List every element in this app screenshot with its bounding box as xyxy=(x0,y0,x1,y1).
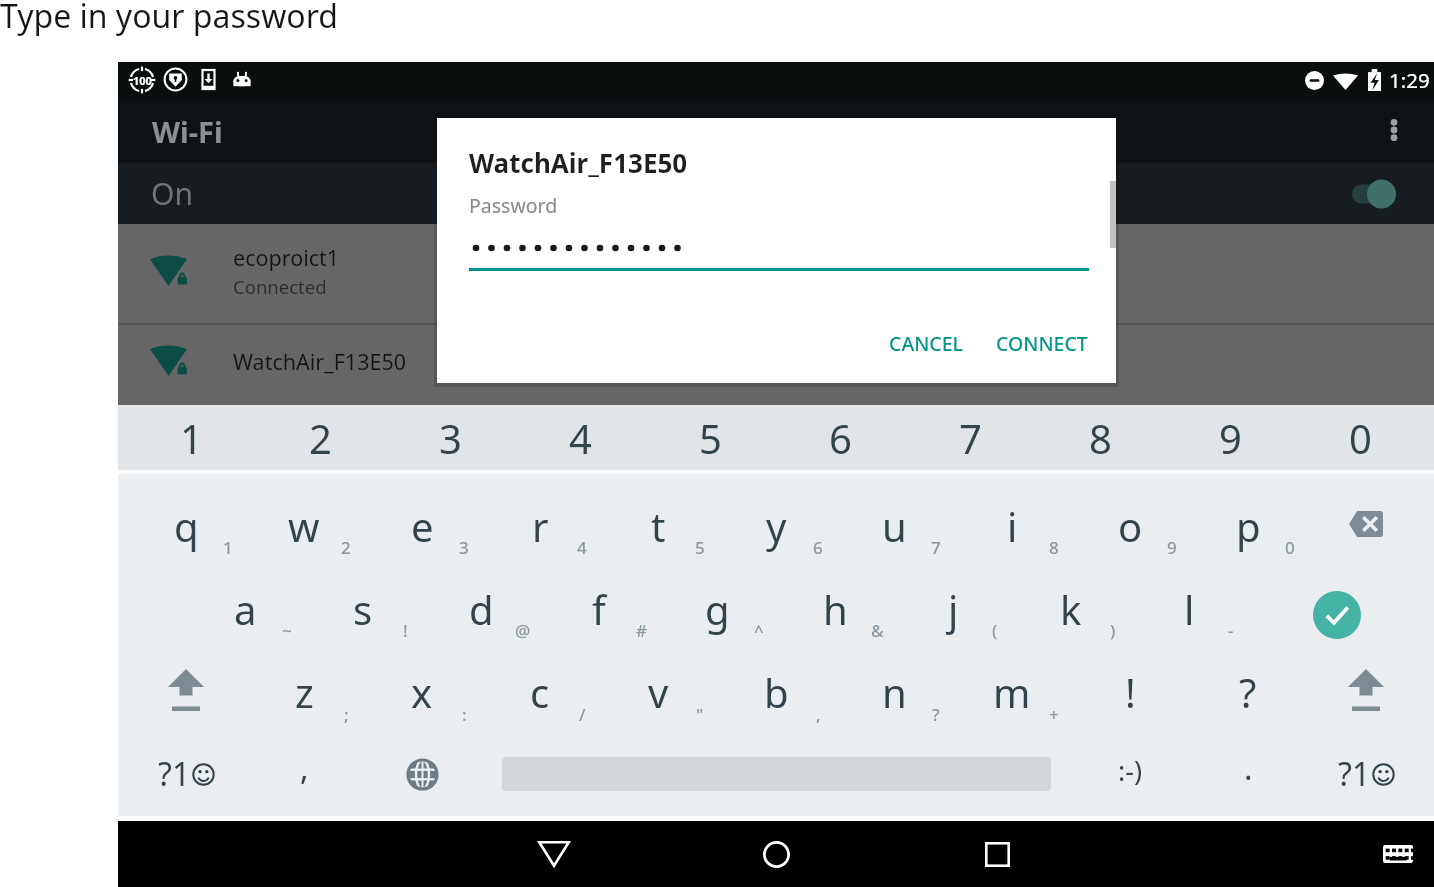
button[interactable]: WatchAir_F13E50 xyxy=(118,325,1434,397)
button[interactable]: w xyxy=(245,482,363,565)
button[interactable]: Symbols xyxy=(1307,732,1425,816)
button[interactable]: t xyxy=(599,482,717,565)
staticText: Password xyxy=(469,192,558,219)
staticText: & xyxy=(871,619,884,642)
button[interactable]: Space xyxy=(481,732,1071,816)
button[interactable]: Change language xyxy=(363,732,481,816)
button[interactable]: :-) xyxy=(1071,732,1189,816)
staticText: j xyxy=(948,582,959,636)
button[interactable]: 3 xyxy=(385,405,515,470)
button[interactable]: More options xyxy=(1370,106,1418,154)
staticText: 7 xyxy=(959,411,982,465)
button[interactable]: r xyxy=(481,482,599,565)
button[interactable]: ! xyxy=(1071,648,1189,732)
staticText: ) xyxy=(1110,619,1116,642)
button[interactable]: Shift xyxy=(1307,648,1425,732)
staticText: t xyxy=(651,499,666,553)
button[interactable]: Symbols xyxy=(127,732,245,816)
staticText: o xyxy=(1118,499,1143,553)
staticText: Wi-Fi xyxy=(152,112,223,151)
staticText: Type in your password xyxy=(0,0,338,38)
button[interactable]: l xyxy=(1130,565,1248,648)
button[interactable]: 8 xyxy=(1035,405,1165,470)
button[interactable]: m xyxy=(953,648,1071,732)
button[interactable]: x xyxy=(363,648,481,732)
staticText: v xyxy=(648,665,669,719)
staticText: ?1 xyxy=(158,752,191,796)
button[interactable]: CANCEL xyxy=(879,320,973,367)
staticText: d xyxy=(469,582,494,636)
staticText: a xyxy=(234,582,257,636)
button[interactable]: ecoproict1 xyxy=(118,221,1434,321)
button[interactable]: Recent apps xyxy=(969,826,1025,882)
staticText: ? xyxy=(1239,665,1257,719)
button[interactable]: Shift xyxy=(127,648,245,732)
staticText: : xyxy=(462,703,467,726)
staticText: - xyxy=(1228,619,1234,642)
staticText: WatchAir_F13E50 xyxy=(469,145,688,180)
staticText: 3 xyxy=(459,536,469,559)
staticText: 6 xyxy=(829,411,852,465)
button[interactable]: q xyxy=(127,482,245,565)
staticText: r xyxy=(532,499,549,553)
staticText: , xyxy=(300,746,309,790)
staticText: / xyxy=(579,703,586,726)
button[interactable]: h xyxy=(776,565,894,648)
button[interactable]: c xyxy=(481,648,599,732)
staticText: ! xyxy=(1125,665,1136,719)
button[interactable]: , xyxy=(245,732,363,816)
button[interactable]: p xyxy=(1189,482,1307,565)
staticText: n xyxy=(882,665,907,719)
button[interactable]: Back xyxy=(526,826,582,882)
button[interactable]: n xyxy=(835,648,953,732)
staticText: CONNECT xyxy=(996,330,1088,357)
button[interactable]: z xyxy=(245,648,363,732)
staticText: Connected xyxy=(233,274,327,299)
button[interactable]: k xyxy=(1012,565,1130,648)
button[interactable]: Enter xyxy=(1248,565,1425,648)
button[interactable]: 2 xyxy=(256,405,385,470)
button[interactable]: d xyxy=(422,565,540,648)
button[interactable]: s xyxy=(304,565,422,648)
button[interactable]: 0 xyxy=(1295,405,1425,470)
button[interactable]: ? xyxy=(1189,648,1307,732)
button[interactable]: Home xyxy=(748,826,804,882)
staticText: ^ xyxy=(754,619,764,642)
button[interactable]: Backspace xyxy=(1307,482,1425,565)
staticText: + xyxy=(1049,703,1059,726)
staticText: p xyxy=(1236,499,1261,553)
staticText: z xyxy=(295,665,314,719)
button[interactable]: Switch keyboard xyxy=(1376,832,1420,876)
button[interactable]: Wi-Fi on/off xyxy=(1352,172,1396,216)
staticText: @ xyxy=(515,619,531,642)
staticText: q xyxy=(174,499,199,553)
staticText: CANCEL xyxy=(889,330,963,357)
staticText: c xyxy=(530,665,550,719)
staticText: u xyxy=(882,499,907,553)
staticText: , xyxy=(816,703,821,726)
staticText: s xyxy=(353,582,373,636)
button[interactable]: v xyxy=(599,648,717,732)
button[interactable]: o xyxy=(1071,482,1189,565)
button[interactable]: 6 xyxy=(775,405,905,470)
button[interactable]: . xyxy=(1189,732,1307,816)
button[interactable]: 5 xyxy=(645,405,775,470)
button[interactable]: b xyxy=(717,648,835,732)
button[interactable]: e xyxy=(363,482,481,565)
button[interactable]: 1 xyxy=(127,405,256,470)
button[interactable]: u xyxy=(835,482,953,565)
button[interactable]: 7 xyxy=(905,405,1035,470)
button[interactable]: j xyxy=(894,565,1012,648)
button[interactable]: CONNECT xyxy=(986,320,1098,367)
button[interactable]: a xyxy=(186,565,304,648)
staticText: ; xyxy=(344,703,349,726)
button[interactable]: 4 xyxy=(515,405,645,470)
button[interactable]: f xyxy=(540,565,658,648)
button[interactable]: i xyxy=(953,482,1071,565)
button[interactable]: 9 xyxy=(1165,405,1295,470)
button[interactable]: g xyxy=(658,565,776,648)
button[interactable]: y xyxy=(717,482,835,565)
staticText: ?1 xyxy=(1338,752,1371,796)
staticText: " xyxy=(696,703,704,726)
staticText: 7 xyxy=(931,536,941,559)
